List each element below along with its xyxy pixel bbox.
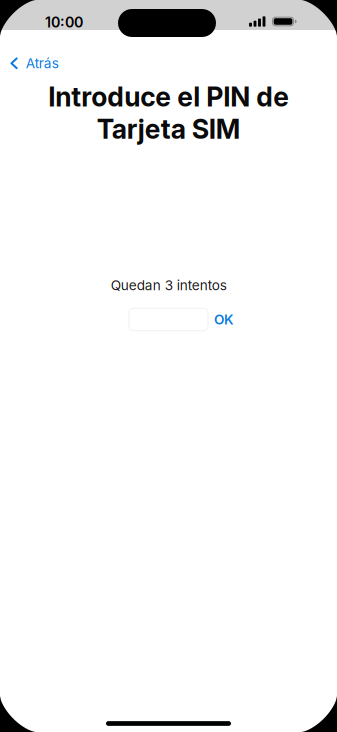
staticText: Introduce el PIN de Tarjeta SIM [48,81,289,145]
staticText: Atrás [26,55,59,72]
staticText: 10:00 [45,14,83,31]
staticText: Quedan 3 intentos [111,277,227,293]
button[interactable]: OK [209,306,239,333]
staticText: OK [214,311,234,328]
button[interactable]: Atrás [0,48,71,79]
